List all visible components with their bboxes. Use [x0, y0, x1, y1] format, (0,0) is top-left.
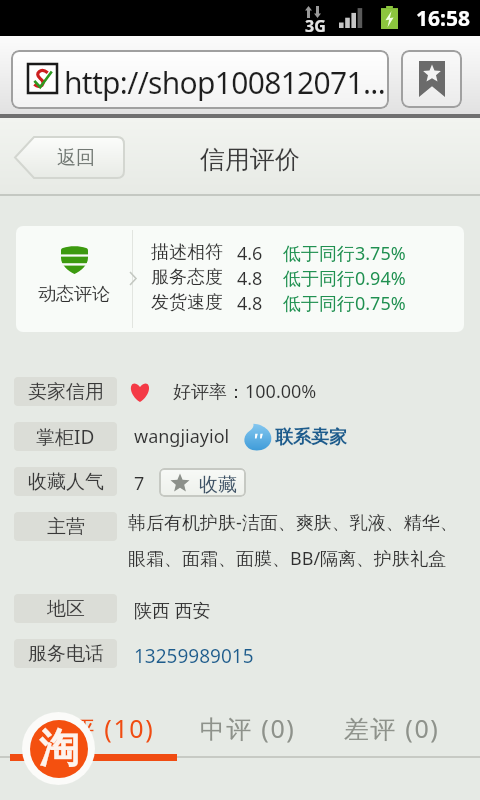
staticText: 低于同行0.75% — [283, 291, 406, 316]
staticText: 服务态度 — [151, 266, 223, 289]
staticText: 低于同行0.94% — [283, 266, 406, 291]
staticText: 收藏 — [199, 473, 237, 497]
staticText: 返回 — [57, 146, 95, 170]
staticText: 4.8 — [237, 291, 263, 316]
button[interactable]: 收藏 — [159, 468, 246, 497]
staticText: 差评 (0) — [344, 711, 440, 745]
staticText: 7 — [134, 471, 145, 496]
button[interactable]: 好评 (10) — [24, 708, 174, 748]
staticText: 4.8 — [237, 266, 263, 291]
staticText: 服务电话 — [28, 642, 104, 666]
staticText: 好评 (10) — [43, 711, 155, 745]
staticText: wangjiayiol — [134, 424, 230, 449]
staticText: 主营 — [47, 515, 85, 539]
staticText: 动态评论 — [38, 283, 110, 306]
staticText: http://shop100812071.... — [64, 62, 389, 103]
staticText: 韩后有机护肤-洁面、爽肤、乳液、精华、 — [128, 510, 458, 535]
staticText: 联系卖家 — [275, 426, 347, 449]
staticText: 眼霜、面霜、面膜、BB/隔离、护肤礼盒 — [128, 546, 447, 571]
staticText: 4.6 — [237, 241, 263, 266]
staticText: 中评 (0) — [200, 711, 296, 745]
staticText: 信用评价 — [200, 144, 300, 175]
staticText: 好评率：100.00% — [173, 379, 317, 404]
button[interactable]: Taobao — [22, 712, 95, 785]
staticText: 描述相符 — [151, 241, 223, 264]
button[interactable]: 联系卖家 — [242, 423, 347, 451]
button[interactable]: http://shop100812071.... — [11, 50, 389, 109]
staticText: 3G — [305, 15, 326, 37]
staticText: 卖家信用 — [28, 380, 104, 404]
staticText: 掌柜ID — [36, 424, 95, 450]
staticText: 16:58 — [416, 4, 470, 33]
button[interactable]: 返回 — [14, 136, 125, 179]
button[interactable]: 中评 (0) — [173, 708, 323, 748]
staticText: 低于同行3.75% — [283, 241, 406, 266]
staticText: 陕西 西安 — [134, 598, 211, 623]
staticText: 淘 — [39, 723, 79, 773]
staticText: 地区 — [47, 597, 85, 621]
button[interactable]: 差评 (0) — [317, 708, 467, 748]
button[interactable]: 13259989015 — [134, 643, 254, 669]
staticText: 发货速度 — [151, 291, 223, 314]
button[interactable]: Bookmarks — [401, 50, 462, 108]
staticText: 收藏人气 — [28, 470, 104, 494]
button[interactable]: 动态评论 — [16, 226, 464, 332]
